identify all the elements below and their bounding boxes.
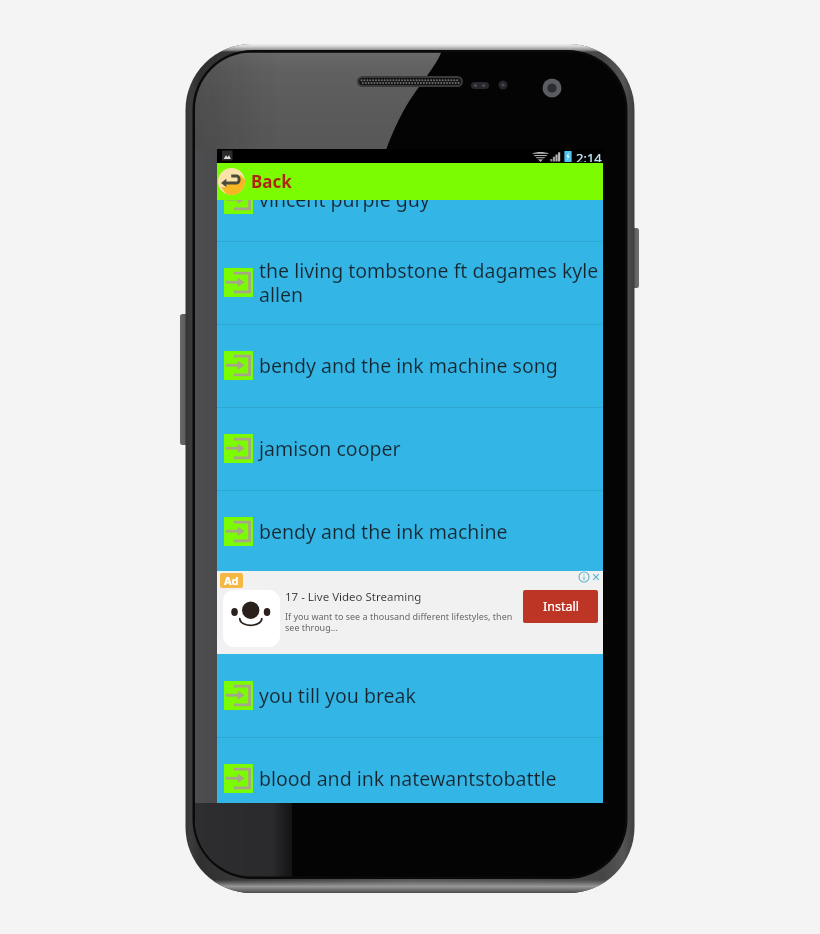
other: Back: [218, 168, 245, 195]
staticText: Ad: [224, 573, 239, 588]
staticText: bendy and the ink machine: [259, 518, 508, 545]
staticText: 17 - Live Video Streaming: [285, 589, 422, 605]
button[interactable]: Ad: [217, 571, 603, 654]
button[interactable]: bendy and the ink machine song: [217, 324, 603, 407]
button[interactable]: Install: [523, 590, 598, 623]
staticText: the living tombstone ft dagames kyle all…: [259, 257, 603, 308]
staticText: vincent purple guy: [259, 186, 430, 213]
button[interactable]: Back: [217, 163, 603, 200]
other: Ad info: [578, 571, 590, 583]
button[interactable]: blood and ink natewantstobattle: [217, 737, 603, 820]
button[interactable]: bendy and the ink machine: [217, 490, 603, 573]
staticText: jamison cooper: [259, 435, 401, 462]
staticText: bendy and the ink machine song: [259, 352, 558, 379]
staticText: 2:14: [576, 149, 602, 162]
staticText: Back: [251, 170, 292, 193]
staticText: If you want to see a thousand different …: [285, 610, 517, 633]
staticText: you till you break: [259, 682, 416, 709]
button[interactable]: jamison cooper: [217, 407, 603, 490]
button[interactable]: you till you break: [217, 654, 603, 737]
button[interactable]: vincent purple guy: [217, 158, 603, 241]
other: Close ad: [590, 571, 602, 583]
button[interactable]: the living tombstone ft dagames kyle all…: [217, 241, 603, 324]
staticText: Install: [543, 598, 579, 615]
staticText: blood and ink natewantstobattle: [259, 765, 557, 792]
